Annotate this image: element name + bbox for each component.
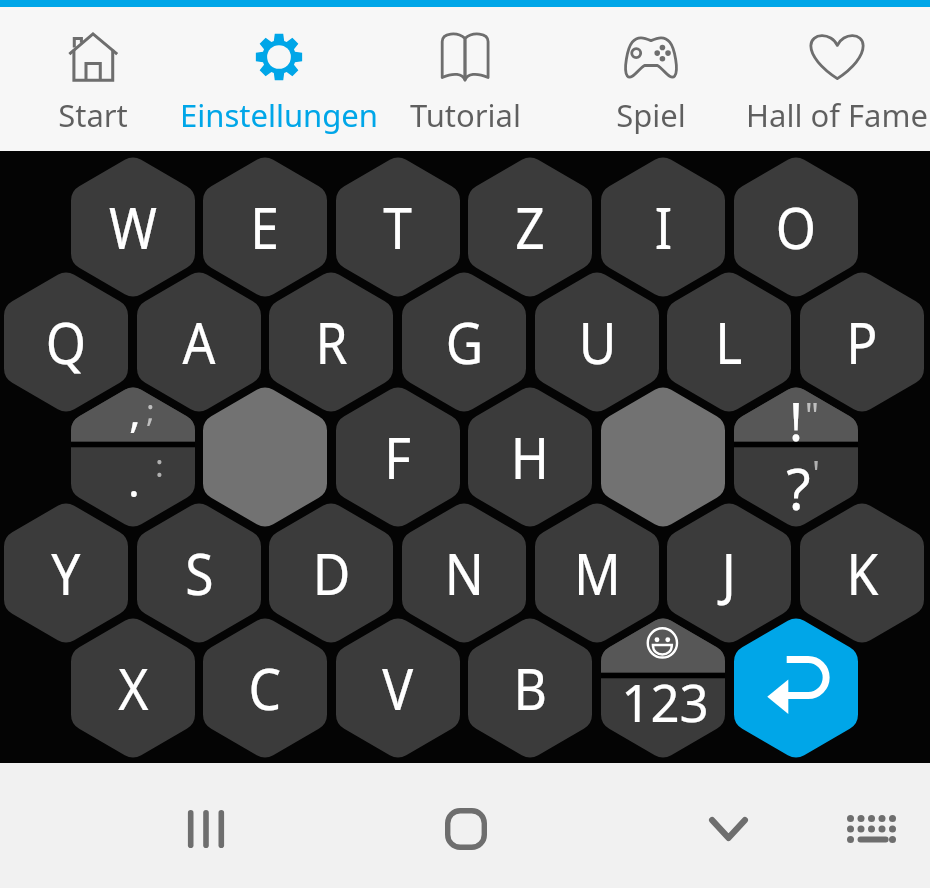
- button[interactable]: B: [468, 616, 592, 760]
- button[interactable]: M: [535, 501, 659, 645]
- staticText: Q: [46, 304, 86, 380]
- staticText: I: [655, 189, 672, 265]
- staticText: B: [513, 650, 547, 726]
- staticText: K: [846, 535, 879, 611]
- staticText: ;: [146, 389, 155, 431]
- button[interactable]: Z: [468, 155, 592, 299]
- staticText: D: [313, 535, 350, 611]
- staticText: W: [109, 189, 158, 265]
- staticText: F: [384, 419, 412, 495]
- staticText: O: [776, 189, 816, 265]
- button[interactable]: R: [269, 270, 393, 414]
- staticText: U: [579, 304, 616, 380]
- button[interactable]: J: [667, 501, 791, 645]
- button[interactable]: N: [402, 501, 526, 645]
- staticText: Tutorial: [410, 94, 521, 136]
- button[interactable]: Hall of Fame: [744, 7, 930, 151]
- button[interactable]: Change keyboard: [826, 763, 916, 888]
- button[interactable]: Einstellungen: [186, 7, 372, 151]
- staticText: C: [248, 650, 281, 726]
- staticText: ": [805, 392, 819, 438]
- button[interactable]: U: [535, 270, 659, 414]
- button[interactable]: !: [734, 385, 858, 529]
- staticText: L: [715, 304, 743, 380]
- staticText: H: [511, 419, 549, 495]
- button[interactable]: Hide keyboard: [678, 763, 778, 888]
- staticText: V: [382, 650, 414, 726]
- staticText: J: [722, 535, 736, 611]
- button[interactable]: C: [203, 616, 327, 760]
- staticText: Z: [515, 189, 546, 265]
- staticText: Hall of Fame: [746, 94, 928, 136]
- button[interactable]: [734, 616, 858, 760]
- button[interactable]: G: [402, 270, 526, 414]
- staticText: Spiel: [616, 94, 686, 136]
- button[interactable]: [601, 385, 725, 529]
- staticText: A: [182, 304, 215, 380]
- button[interactable]: Tutorial: [372, 7, 558, 151]
- button[interactable]: V: [336, 616, 460, 760]
- button[interactable]: T: [336, 155, 460, 299]
- button[interactable]: ,: [71, 385, 195, 529]
- staticText: 123: [621, 667, 709, 736]
- staticText: P: [846, 304, 878, 380]
- staticText: :: [155, 444, 164, 486]
- staticText: X: [118, 650, 149, 726]
- staticText: N: [445, 535, 484, 611]
- button[interactable]: O: [734, 155, 858, 299]
- button[interactable]: Start: [0, 7, 186, 151]
- staticText: E: [250, 189, 280, 265]
- button[interactable]: I: [601, 155, 725, 299]
- staticText: M: [574, 535, 621, 611]
- button[interactable]: P: [800, 270, 924, 414]
- button[interactable]: W: [71, 155, 195, 299]
- button[interactable]: F: [336, 385, 460, 529]
- button[interactable]: 123: [601, 616, 725, 760]
- button[interactable]: X: [71, 616, 195, 760]
- button[interactable]: K: [800, 501, 924, 645]
- staticText: ?: [786, 450, 811, 526]
- button[interactable]: Y: [4, 501, 128, 645]
- button[interactable]: Spiel: [558, 7, 744, 151]
- button[interactable]: D: [269, 501, 393, 645]
- staticText: G: [446, 304, 483, 380]
- staticText: .: [128, 450, 140, 510]
- button[interactable]: S: [137, 501, 261, 645]
- staticText: ,: [129, 380, 141, 440]
- staticText: R: [315, 304, 348, 380]
- button[interactable]: Q: [4, 270, 128, 414]
- staticText: T: [383, 189, 413, 265]
- button[interactable]: [203, 385, 327, 529]
- button[interactable]: Recent apps: [156, 763, 256, 888]
- staticText: Y: [51, 535, 81, 611]
- button[interactable]: Home: [416, 763, 516, 888]
- staticText: Start: [58, 94, 128, 136]
- button[interactable]: E: [203, 155, 327, 299]
- button[interactable]: H: [468, 385, 592, 529]
- button[interactable]: A: [137, 270, 261, 414]
- staticText: !: [789, 385, 803, 456]
- staticText: S: [185, 535, 214, 611]
- button[interactable]: L: [667, 270, 791, 414]
- staticText: Einstellungen: [180, 94, 378, 136]
- staticText: ': [812, 450, 820, 496]
